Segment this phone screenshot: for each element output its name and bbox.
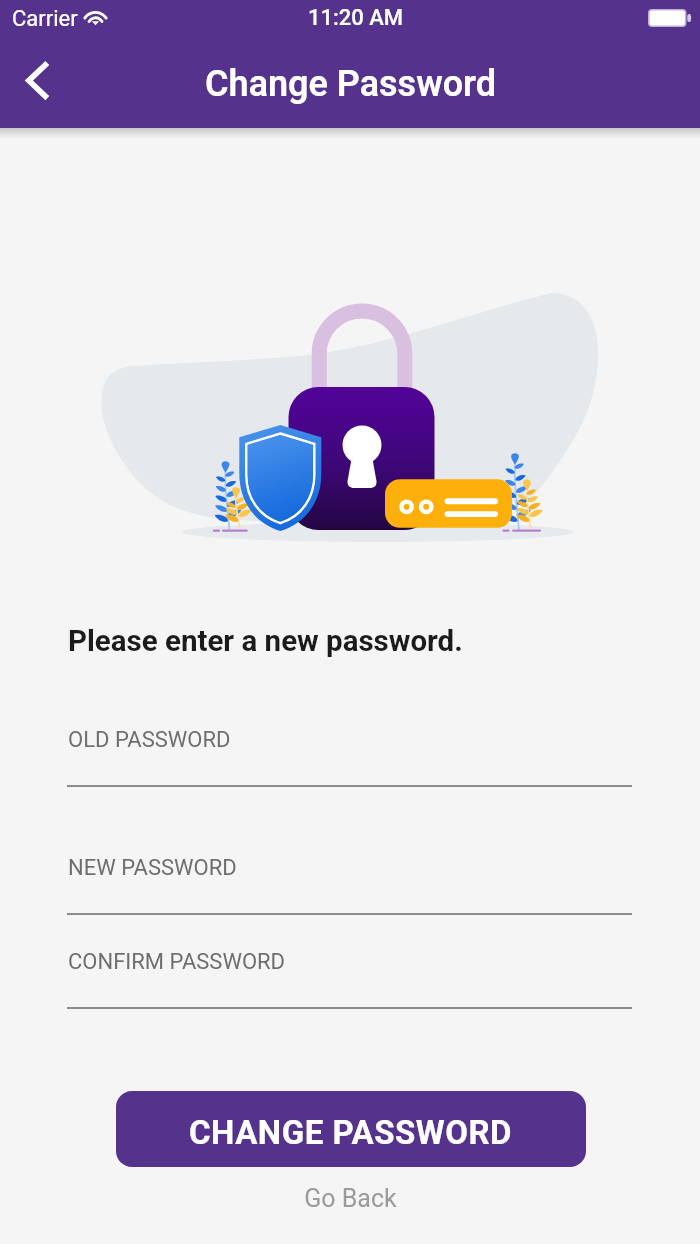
button[interactable]: CHANGE PASSWORD — [116, 1091, 586, 1167]
staticText: NEW PASSWORD — [68, 855, 237, 881]
staticText: Go Back — [304, 1184, 397, 1213]
staticText: Change Password — [205, 63, 496, 105]
staticText: CONFIRM PASSWORD — [68, 949, 286, 975]
staticText: OLD PASSWORD — [68, 727, 231, 753]
button[interactable]: Back — [0, 40, 74, 128]
staticText: Carrier — [12, 6, 78, 32]
button[interactable]: Go Back — [0, 1178, 700, 1218]
staticText: CHANGE PASSWORD — [189, 1113, 513, 1152]
staticText: Please enter a new password. — [68, 624, 463, 659]
staticText: 11:20 AM — [308, 5, 404, 31]
